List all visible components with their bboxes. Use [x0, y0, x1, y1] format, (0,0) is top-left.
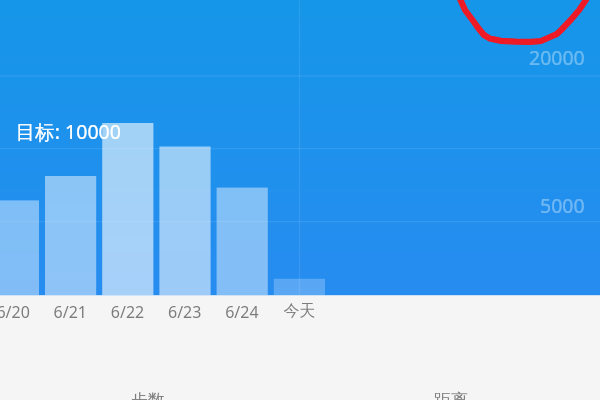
button[interactable]	[0, 362, 300, 400]
button[interactable]	[300, 362, 600, 400]
button[interactable]	[0, 0, 600, 295]
